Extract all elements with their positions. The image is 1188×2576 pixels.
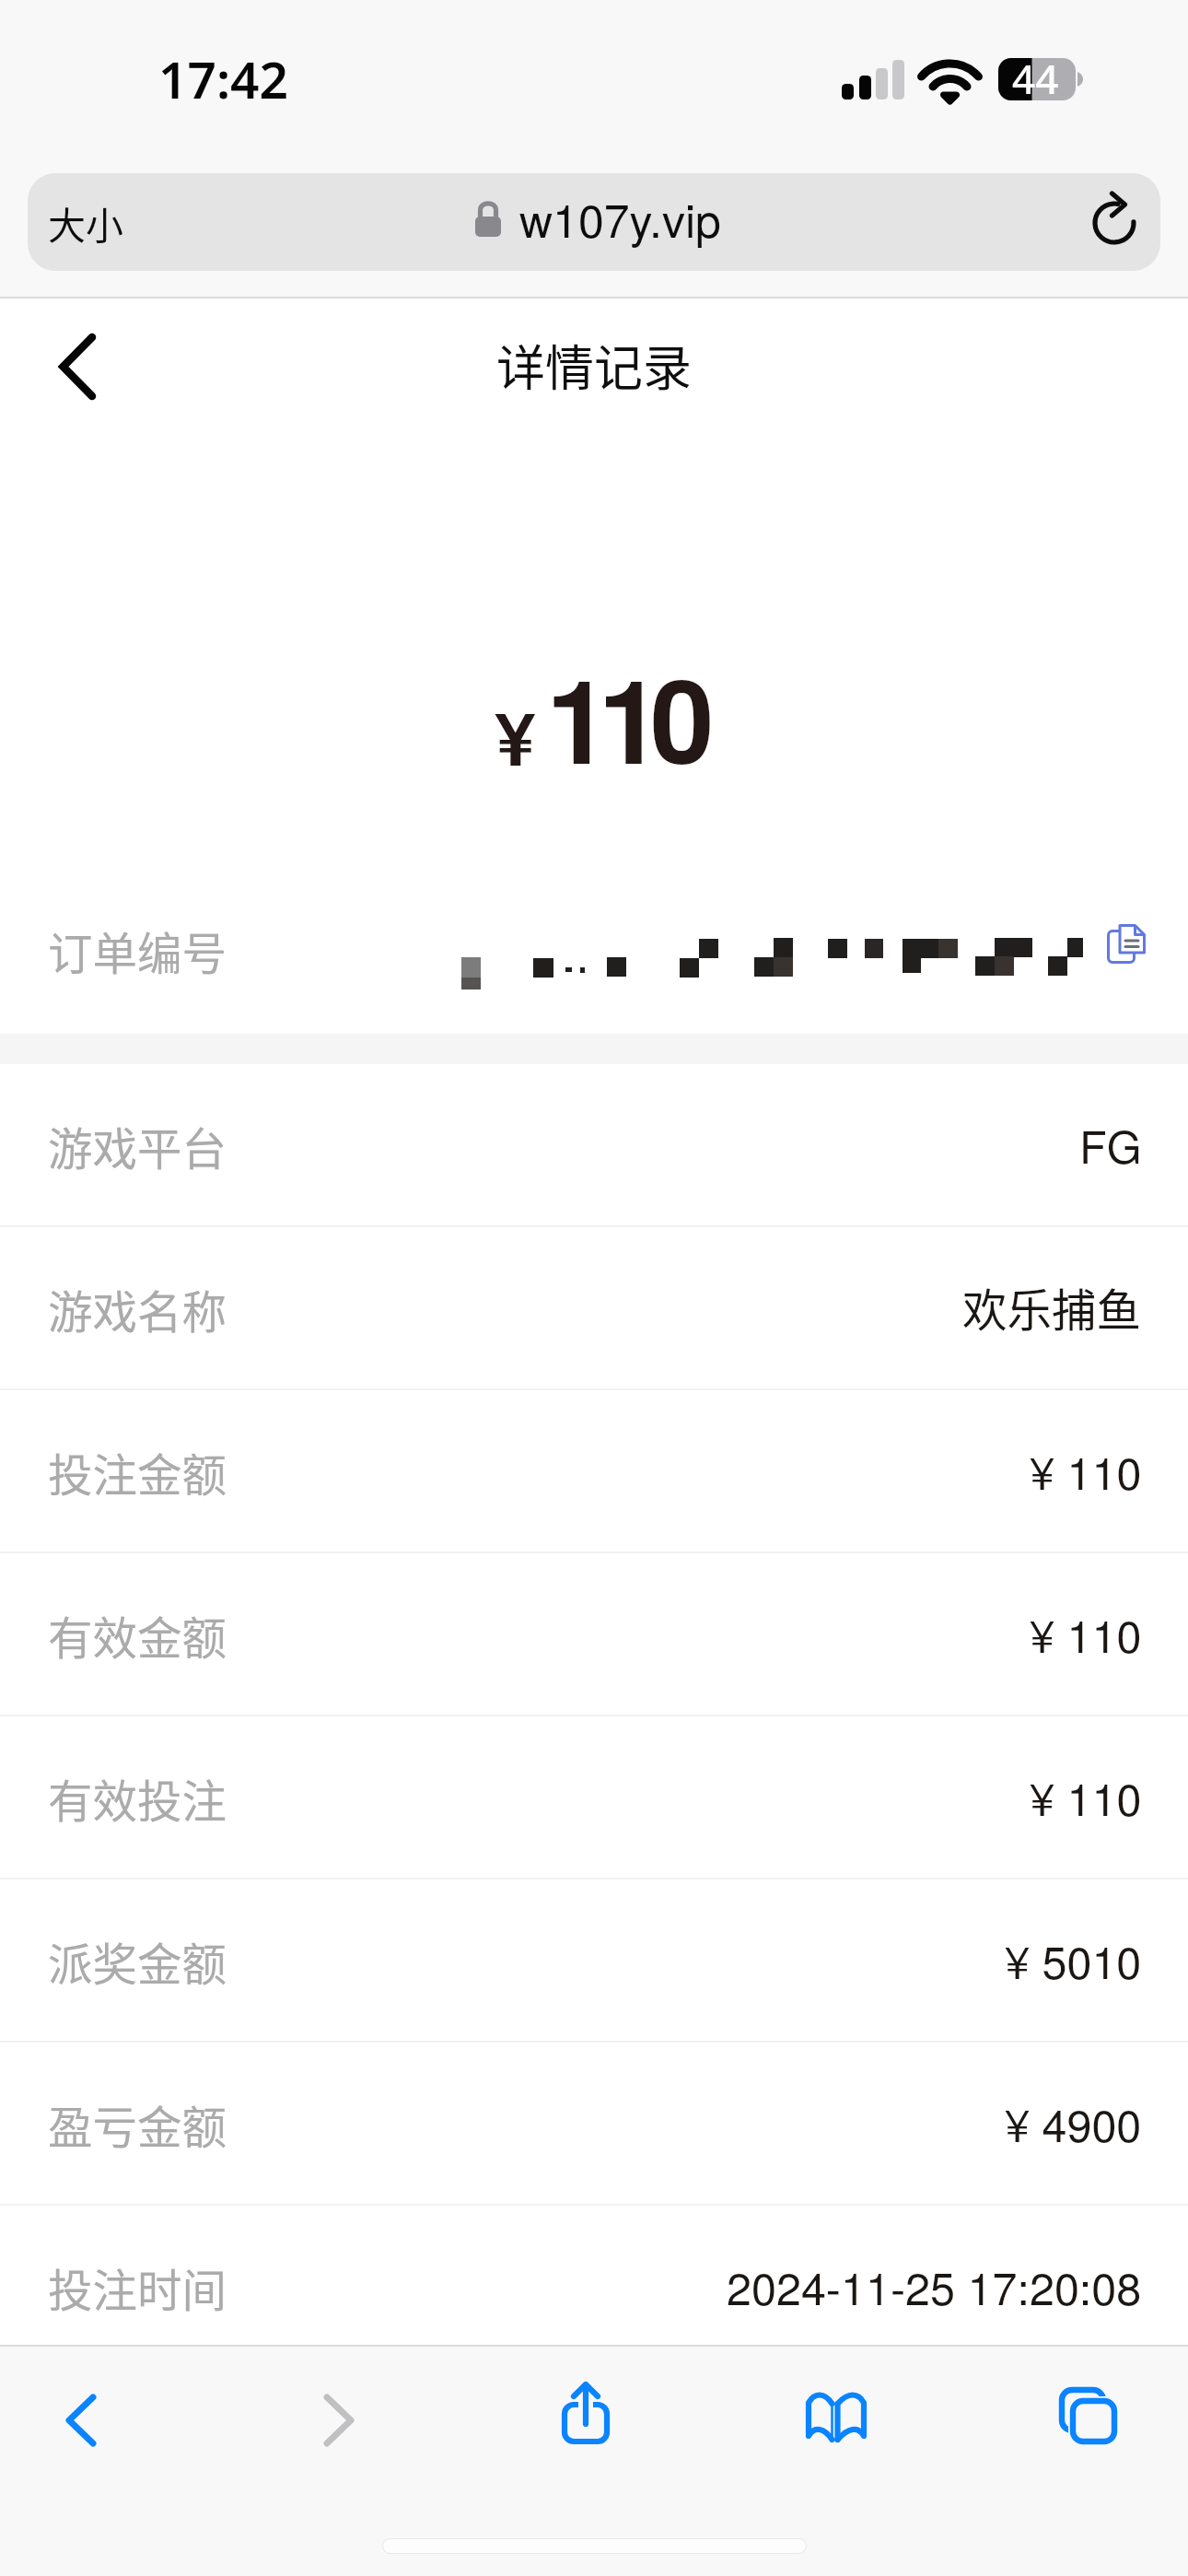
- button[interactable]: Back: [33, 2372, 129, 2468]
- staticText: 大小: [48, 195, 123, 250]
- staticText: 17:42: [158, 44, 289, 113]
- staticText: 游戏名称: [48, 1277, 227, 1341]
- button[interactable]: Copy order number: [1098, 915, 1155, 972]
- staticText: 订单编号: [48, 919, 227, 983]
- staticText: 投注金额: [48, 1440, 227, 1505]
- button[interactable]: Bookmarks: [788, 2369, 884, 2465]
- button[interactable]: Forward: [291, 2372, 387, 2468]
- staticText: w107y.vip: [519, 185, 721, 252]
- button[interactable]: 游戏平台: [0, 1064, 1188, 1227]
- button[interactable]: Reload: [1068, 176, 1160, 268]
- button[interactable]: 游戏名称: [0, 1227, 1188, 1390]
- staticText: 44: [1012, 51, 1059, 106]
- staticText: ¥: [495, 683, 536, 789]
- button[interactable]: 派奖金额: [0, 1879, 1188, 2043]
- staticText: 盈亏金额: [48, 2092, 227, 2157]
- button[interactable]: Tabs: [1040, 2372, 1136, 2468]
- staticText: FG: [1079, 1112, 1142, 1176]
- staticText: 详情记录: [496, 330, 692, 401]
- staticText: 110: [546, 634, 703, 799]
- staticText: 欢乐捕鱼: [962, 1275, 1142, 1340]
- button[interactable]: 投注金额: [0, 1390, 1188, 1553]
- staticText: 派奖金额: [48, 1929, 227, 1994]
- button[interactable]: Back: [24, 319, 131, 415]
- button[interactable]: 有效金额: [0, 1553, 1188, 1716]
- staticText: 游戏平台: [48, 1114, 227, 1178]
- button[interactable]: 订单编号: [0, 868, 1188, 1034]
- staticText: 有效投注: [48, 1766, 227, 1831]
- button[interactable]: 投注时间: [0, 2206, 1188, 2369]
- staticText: ¥ 110: [1030, 1438, 1142, 1502]
- staticText: ¥ 110: [1030, 1601, 1142, 1665]
- button[interactable]: Share: [538, 2372, 634, 2468]
- staticText: 投注时间: [48, 2255, 227, 2320]
- staticText: ¥ 110: [1030, 1764, 1142, 1828]
- staticText: 2024-11-25 17:20:08: [727, 2254, 1142, 2317]
- button[interactable]: 盈亏金额: [0, 2043, 1188, 2206]
- button[interactable]: 大小: [28, 173, 1160, 271]
- staticText: ¥ 4900: [1005, 2090, 1142, 2154]
- button[interactable]: 有效投注: [0, 1716, 1188, 1879]
- staticText: ¥ 5010: [1005, 1927, 1142, 1991]
- staticText: 有效金额: [48, 1603, 227, 1668]
